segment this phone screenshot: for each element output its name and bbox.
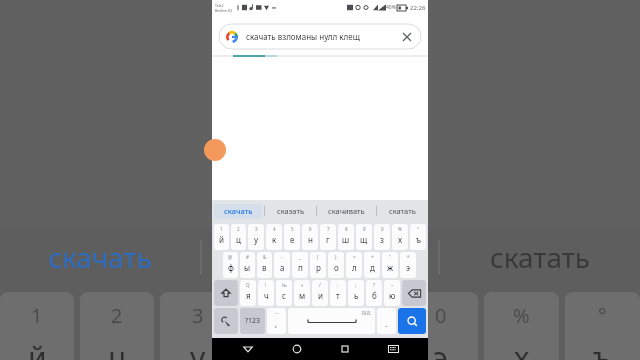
staticText: скачать взломаны нулл клещ [246, 31, 360, 42]
button[interactable]: скачать [212, 200, 264, 222]
staticText: 8 [345, 226, 348, 232]
staticText: @ [228, 254, 233, 260]
button[interactable]: - [274, 252, 290, 278]
button[interactable]: & [257, 252, 272, 278]
button[interactable]: сказать [265, 200, 316, 222]
staticText: скачать [224, 206, 253, 216]
button[interactable]: 1 [214, 224, 229, 250]
staticText: ~ [391, 282, 394, 288]
staticText: скатать [490, 238, 590, 276]
button[interactable]: Back [233, 338, 263, 360]
staticText: " [389, 254, 391, 260]
button[interactable]: + [364, 252, 380, 278]
button[interactable]: Home [282, 338, 312, 360]
button[interactable]: % [392, 224, 408, 250]
button[interactable]: @ [223, 252, 238, 278]
button[interactable]: 0 [374, 224, 390, 250]
button[interactable]: 4 [266, 224, 282, 250]
button[interactable]: 6 [302, 224, 318, 250]
staticText: 0 [435, 302, 447, 329]
button[interactable]: 3 [248, 224, 264, 250]
button[interactable]: Hide keyboard [378, 338, 408, 360]
staticText: з [380, 234, 384, 245]
staticText: ч [264, 290, 269, 301]
staticText: ° [598, 302, 607, 329]
staticText: . [385, 318, 388, 329]
button[interactable]: 5 [284, 224, 300, 250]
button[interactable]: ! [258, 280, 274, 306]
button[interactable]: ~ [384, 280, 400, 306]
button[interactable]: " [382, 252, 398, 278]
button[interactable]: _ [292, 252, 308, 278]
button[interactable]: Search [398, 308, 426, 334]
staticText: ··· [275, 310, 279, 316]
staticText: о [334, 262, 339, 273]
button[interactable]: Clear search [400, 30, 414, 44]
staticText: / [319, 282, 321, 288]
staticText: Beeline K2 [215, 8, 233, 13]
button[interactable]: 8 [338, 224, 354, 250]
staticText: л [352, 262, 357, 273]
button[interactable]: : [330, 280, 346, 306]
button[interactable]: Backspace [402, 280, 426, 306]
button[interactable]: ° [410, 224, 426, 250]
button[interactable]: Shift [214, 280, 238, 306]
button[interactable]: 2 [231, 224, 246, 250]
staticText: , [275, 318, 278, 329]
button[interactable]: ) [328, 252, 344, 278]
button[interactable]: « [294, 280, 310, 306]
button[interactable]: ··· [267, 308, 286, 334]
button[interactable]: Space [288, 308, 375, 334]
staticText: 7 [327, 226, 330, 232]
staticText: 6 [309, 226, 312, 232]
button[interactable]: . [377, 308, 396, 334]
staticText: х [398, 234, 403, 245]
button[interactable]: 7 [320, 224, 336, 250]
staticText: 9 [354, 302, 366, 329]
staticText: 1 [220, 226, 223, 232]
button[interactable]: Handwriting [214, 308, 238, 334]
staticText: ; [355, 282, 357, 288]
button[interactable]: = [346, 252, 362, 278]
button[interactable]: # [240, 252, 255, 278]
staticText: 2 [111, 302, 123, 329]
staticText: % [513, 302, 530, 329]
button[interactable]: скатать [377, 200, 428, 222]
staticText: в [262, 262, 267, 273]
button[interactable]: ?123 [240, 308, 265, 334]
button[interactable]: ? [366, 280, 382, 306]
staticText: р [316, 262, 321, 273]
button[interactable]: 9 [356, 224, 372, 250]
staticText: ?123 [245, 316, 261, 326]
staticText: ы [244, 262, 251, 273]
button[interactable]: ; [348, 280, 364, 306]
button[interactable]: № [276, 280, 292, 306]
staticText: : [337, 282, 339, 288]
staticText: _ [299, 254, 301, 260]
staticText: э [406, 262, 410, 273]
staticText: 5 [291, 226, 294, 232]
staticText: э [433, 337, 448, 360]
staticText: = [353, 254, 356, 260]
staticText: 22:26 [410, 4, 426, 12]
staticText: № [282, 282, 287, 288]
staticText: к [271, 337, 287, 360]
staticText: скачать [48, 238, 152, 276]
button[interactable]: * [400, 252, 416, 278]
staticText: Tele2 [215, 3, 224, 8]
button[interactable]: Recents [330, 338, 360, 360]
button[interactable]: скачивать [317, 200, 376, 222]
staticText: ж [387, 262, 394, 273]
button[interactable]: / [312, 280, 328, 306]
staticText: 9 [363, 226, 366, 232]
staticText: и [318, 290, 323, 301]
button[interactable]: ( [310, 252, 326, 278]
staticText: е [290, 234, 295, 245]
staticText: скачивать [328, 206, 365, 216]
staticText: ( [317, 254, 319, 260]
staticText: г [326, 234, 330, 245]
button[interactable]: Q [240, 280, 256, 306]
staticText: й [28, 337, 47, 360]
staticText: 3 [255, 226, 258, 232]
button[interactable]: скачать взломаны нулл клещ [219, 24, 421, 49]
